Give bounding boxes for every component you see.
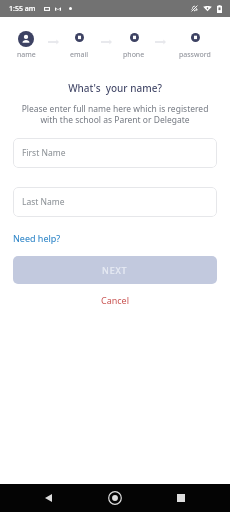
staticText: Please enter full name here which is reg…: [0, 103, 230, 125]
staticText: First Name: [22, 147, 66, 159]
staticText: What's your name?: [0, 81, 230, 95]
staticText: name: [17, 50, 36, 60]
staticText: Need help?: [13, 232, 61, 244]
button[interactable]: Cancel: [101, 294, 130, 306]
button[interactable]: phone: [108, 31, 160, 60]
button[interactable]: name: [0, 31, 52, 60]
staticText: 1:55 am: [9, 4, 36, 14]
button[interactable]: Home: [101, 484, 129, 512]
button[interactable]: Recents: [167, 484, 195, 512]
button[interactable]: email: [53, 31, 105, 60]
staticText: email: [70, 50, 89, 60]
button[interactable]: Need help?: [13, 232, 61, 244]
staticText: Last Name: [22, 196, 65, 208]
staticText: phone: [123, 50, 145, 60]
staticText: Cancel: [101, 294, 130, 306]
button[interactable]: First Name: [13, 138, 217, 168]
button[interactable]: Back: [34, 484, 62, 512]
button[interactable]: password: [169, 31, 221, 60]
staticText: NEXT: [102, 264, 128, 276]
button[interactable]: Last Name: [13, 187, 217, 217]
staticText: password: [179, 50, 211, 60]
button[interactable]: NEXT: [13, 256, 217, 284]
